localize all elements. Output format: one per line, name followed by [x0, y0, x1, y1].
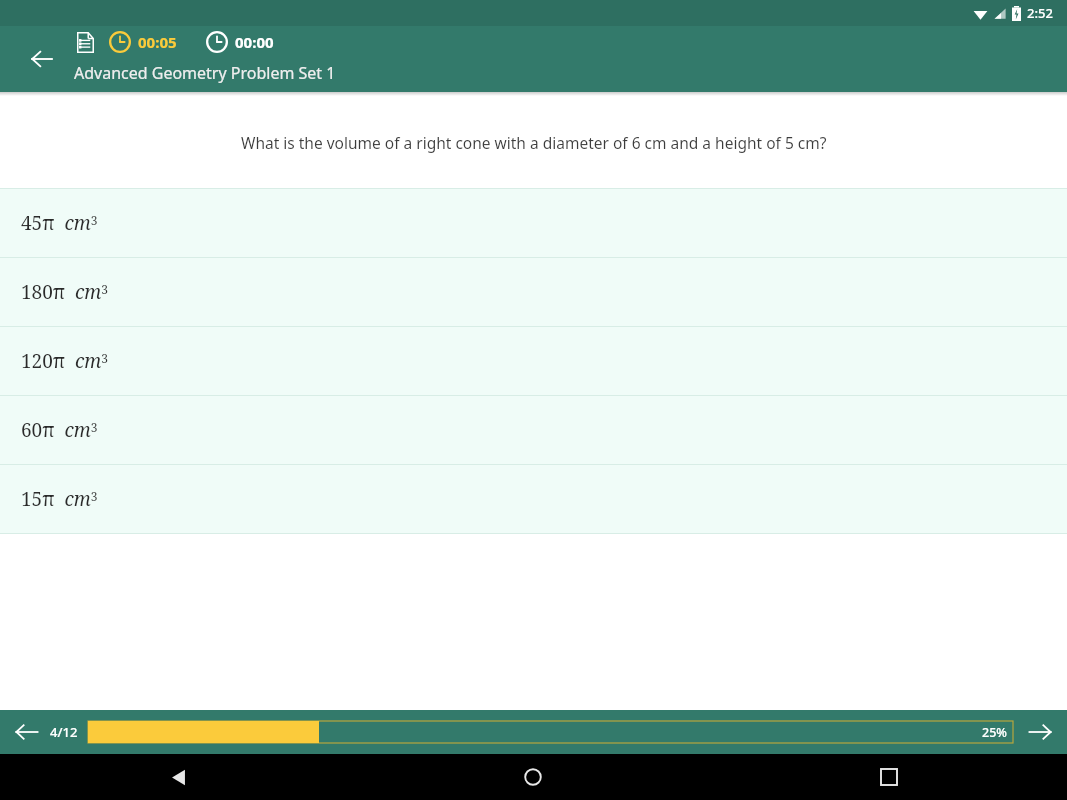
staticText: 45π cm3 — [21, 210, 98, 236]
staticText: 25% — [982, 724, 1007, 741]
staticText: 2:52 — [1027, 4, 1053, 22]
button[interactable]: Back — [22, 39, 62, 79]
staticText: 60π cm3 — [21, 417, 98, 443]
staticText: Advanced Geometry Problem Set 1 — [74, 62, 336, 84]
staticText: 00:00 — [235, 32, 274, 52]
staticText: What is the volume of a right cone with … — [241, 132, 827, 153]
staticText: 120π cm3 — [21, 348, 109, 374]
button[interactable]: 180π cm3 — [0, 258, 1067, 327]
button[interactable]: Next question — [1023, 715, 1057, 749]
staticText: 15π cm3 — [21, 486, 98, 512]
button[interactable]: Back — [158, 757, 198, 797]
staticText: 00:05 — [138, 32, 177, 52]
button[interactable]: Previous question — [10, 715, 44, 749]
button[interactable]: 60π cm3 — [0, 396, 1067, 465]
staticText: 180π cm3 — [21, 279, 109, 305]
staticText: 4/12 — [50, 723, 78, 741]
button[interactable]: Home — [513, 757, 553, 797]
button[interactable]: Recent apps — [869, 757, 909, 797]
button[interactable]: 120π cm3 — [0, 327, 1067, 396]
button[interactable]: 45π cm3 — [0, 189, 1067, 258]
button[interactable]: 15π cm3 — [0, 465, 1067, 534]
